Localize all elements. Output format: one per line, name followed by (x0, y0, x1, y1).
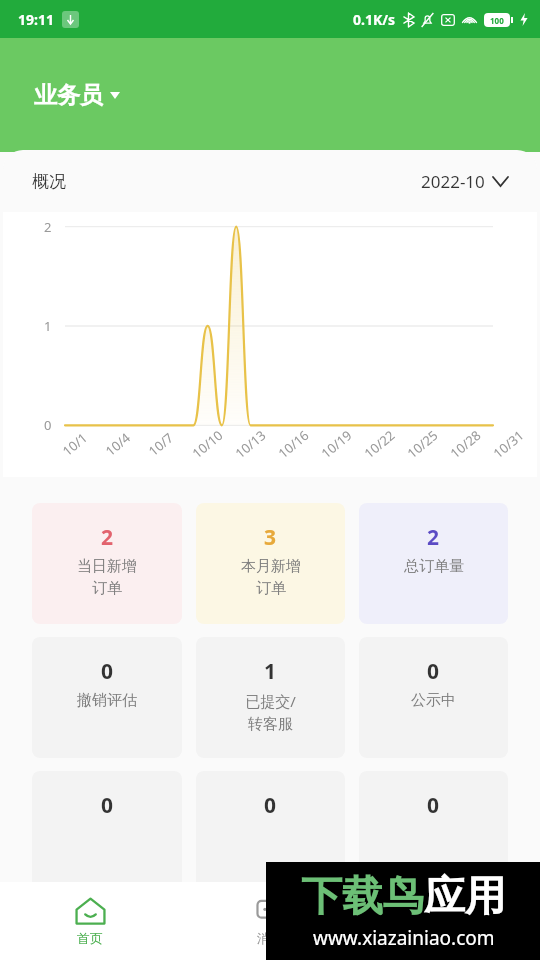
staticText: 2 (101, 523, 114, 552)
staticText: 0 (101, 791, 114, 820)
staticText: 下载鸟 (301, 871, 424, 923)
staticText: 10/28 (446, 426, 485, 462)
button[interactable]: 业务员 (34, 81, 120, 110)
staticText: 撤销评估 (77, 691, 137, 710)
staticText: 10/25 (403, 426, 442, 462)
staticText: 19:11 (18, 10, 54, 29)
button[interactable]: 消息 (180, 882, 360, 960)
staticText: 3 (264, 523, 277, 552)
staticText: 10/10 (188, 426, 227, 462)
staticText: 100 (490, 15, 504, 26)
staticText: 本月新增 订单 (241, 557, 301, 598)
staticText: 10/22 (360, 426, 399, 462)
staticText: 10/7 (144, 428, 177, 460)
button[interactable]: 首页 (0, 882, 180, 960)
staticText: 0 (101, 657, 114, 686)
staticText: 0 (264, 791, 277, 820)
staticText: 0 (427, 657, 440, 686)
staticText: 公示中 (411, 691, 456, 710)
button[interactable]: 1 (196, 637, 345, 758)
staticText: 2 (427, 523, 440, 552)
button[interactable]: 2 (359, 503, 508, 624)
button[interactable]: 2022-10 (421, 170, 508, 193)
staticText: 10/31 (489, 426, 528, 462)
staticText: 10/13 (231, 426, 270, 462)
button[interactable]: 0 (32, 637, 182, 758)
staticText: 业务员 (34, 81, 103, 110)
button[interactable]: 2 (32, 503, 182, 624)
button[interactable]: 3 (196, 503, 345, 624)
staticText: 10/4 (101, 428, 134, 460)
staticText: 0.1K/s (353, 10, 396, 29)
staticText: 1 (264, 657, 277, 686)
button[interactable]: Nav (360, 882, 540, 960)
staticText: www.xiazainiao.com (313, 925, 495, 951)
button[interactable]: 0 (196, 771, 345, 892)
staticText: 10/16 (274, 426, 313, 462)
staticText: 概况 (32, 171, 66, 192)
staticText: 0 (427, 791, 440, 820)
staticText: 已提交/ 转客服 (245, 691, 296, 734)
staticText: 2022-10 (421, 170, 485, 193)
staticText: 0 (44, 416, 52, 434)
staticText: 2 (44, 218, 52, 236)
staticText: 10/1 (58, 428, 91, 460)
staticText: 总订单量 (404, 557, 464, 576)
staticText: 1 (44, 317, 52, 335)
button[interactable]: 0 (359, 637, 508, 758)
staticText: 当日新增 订单 (77, 557, 137, 598)
staticText: 首页 (77, 930, 103, 946)
staticText: 应用 (424, 871, 506, 923)
staticText: 消息 (257, 930, 283, 946)
staticText: 10/19 (317, 426, 356, 462)
button[interactable]: 0 (359, 771, 508, 892)
button[interactable]: 0 (32, 771, 182, 892)
